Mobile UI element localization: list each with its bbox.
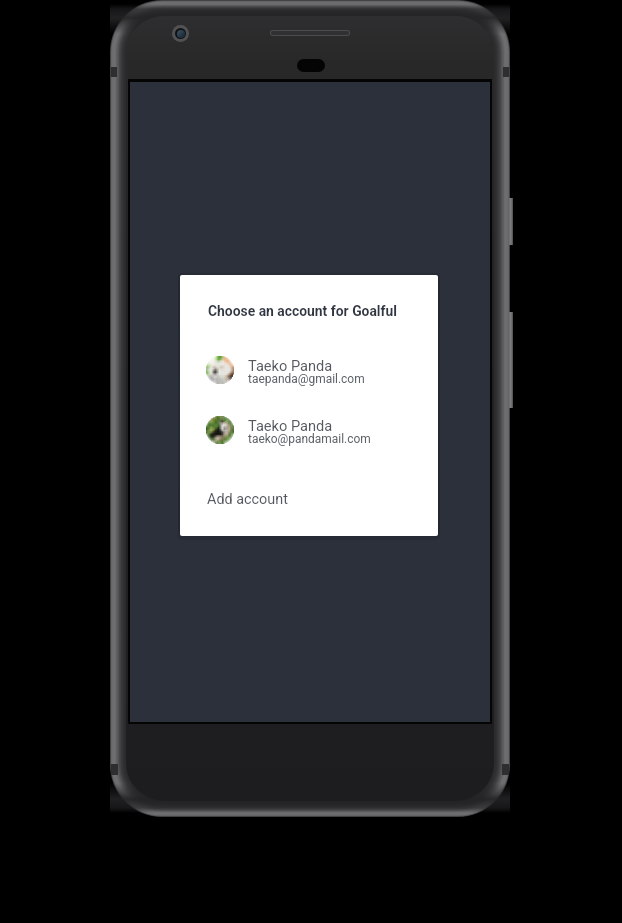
- staticText: Choose an account for Goalful: [208, 303, 397, 319]
- other: Profile photo of Taeko Panda: [206, 356, 234, 384]
- button[interactable]: Profile photo of Taeko Panda: [180, 409, 438, 451]
- staticText: taepanda@gmail.com: [248, 372, 365, 386]
- staticText: Add account: [207, 491, 288, 508]
- other: Profile photo of Taeko Panda: [206, 416, 234, 444]
- staticText: Taeko Panda: [248, 357, 333, 374]
- button[interactable]: Profile photo of Taeko Panda: [180, 349, 438, 391]
- staticText: taeko@pandamail.com: [248, 432, 371, 446]
- button[interactable]: Add account: [180, 484, 438, 514]
- staticText: Taeko Panda: [248, 417, 333, 434]
